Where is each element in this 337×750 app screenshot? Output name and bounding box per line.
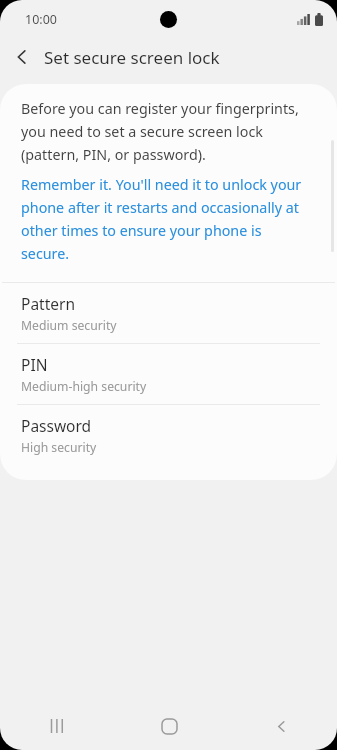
button[interactable]: Back xyxy=(225,702,337,750)
button[interactable]: Recent apps xyxy=(0,702,113,750)
button[interactable]: Pattern xyxy=(0,283,337,343)
staticText: Remember it. You'll need it to unlock yo… xyxy=(21,175,311,263)
button[interactable]: Password xyxy=(0,405,337,465)
button[interactable]: PIN xyxy=(0,344,337,404)
staticText: Pattern xyxy=(21,293,75,314)
staticText: High security xyxy=(21,439,97,456)
button[interactable]: Home xyxy=(113,702,225,750)
staticText: Before you can register your fingerprint… xyxy=(21,99,311,164)
staticText: Set secure screen lock xyxy=(44,46,220,69)
staticText: Medium security xyxy=(21,317,117,334)
staticText: 10:00 xyxy=(25,11,57,28)
staticText: Medium-high security xyxy=(21,378,147,395)
staticText: PIN xyxy=(21,354,48,375)
button[interactable]: Back xyxy=(0,38,44,76)
staticText: Password xyxy=(21,415,92,436)
